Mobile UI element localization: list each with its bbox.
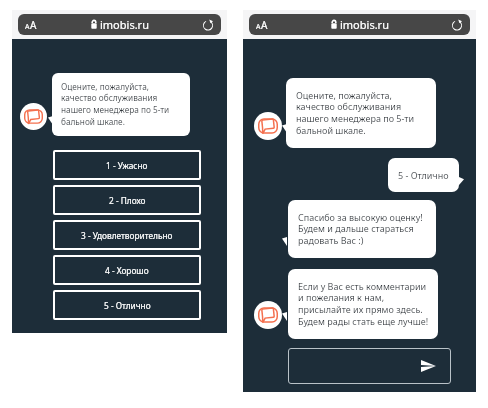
button[interactable]: 3 - Удовлетворительно (53, 220, 201, 250)
staticText: 5 - Отлично (104, 300, 151, 311)
staticText: imobis.ru (340, 17, 389, 32)
button[interactable]: Reload (202, 19, 214, 31)
button[interactable]: 1 - Ужасно (53, 150, 201, 180)
staticText: 4 - Хорошо (105, 265, 149, 276)
button[interactable]: Send (288, 348, 451, 384)
staticText: Если у Вас есть комментарии и пожелания … (298, 280, 428, 328)
staticText: 2 - Плохо (109, 195, 146, 206)
staticText: imobis.ru (100, 17, 149, 32)
staticText: Оцените, пожалуйста, качество обслуживан… (296, 89, 415, 137)
other: Send (421, 360, 436, 372)
button[interactable]: A (18, 14, 221, 35)
button[interactable]: 5 - Отлично (53, 290, 201, 320)
staticText: 3 - Удовлетворительно (81, 230, 173, 241)
button[interactable]: 4 - Хорошо (53, 255, 201, 285)
staticText: A (25, 22, 30, 32)
staticText: Спасибо за высокую оценку! Будем и дальш… (298, 211, 423, 247)
button[interactable]: Reload (451, 19, 463, 31)
button[interactable]: 2 - Плохо (53, 185, 201, 215)
staticText: A (30, 18, 37, 32)
staticText: Оцените, пожалуйста, качество обслуживан… (61, 81, 170, 128)
button[interactable]: A (249, 14, 470, 35)
staticText: 5 - Отлично (398, 169, 449, 181)
staticText: 1 - Ужасно (106, 160, 148, 171)
staticText: A (256, 22, 261, 32)
staticText: A (261, 18, 268, 32)
